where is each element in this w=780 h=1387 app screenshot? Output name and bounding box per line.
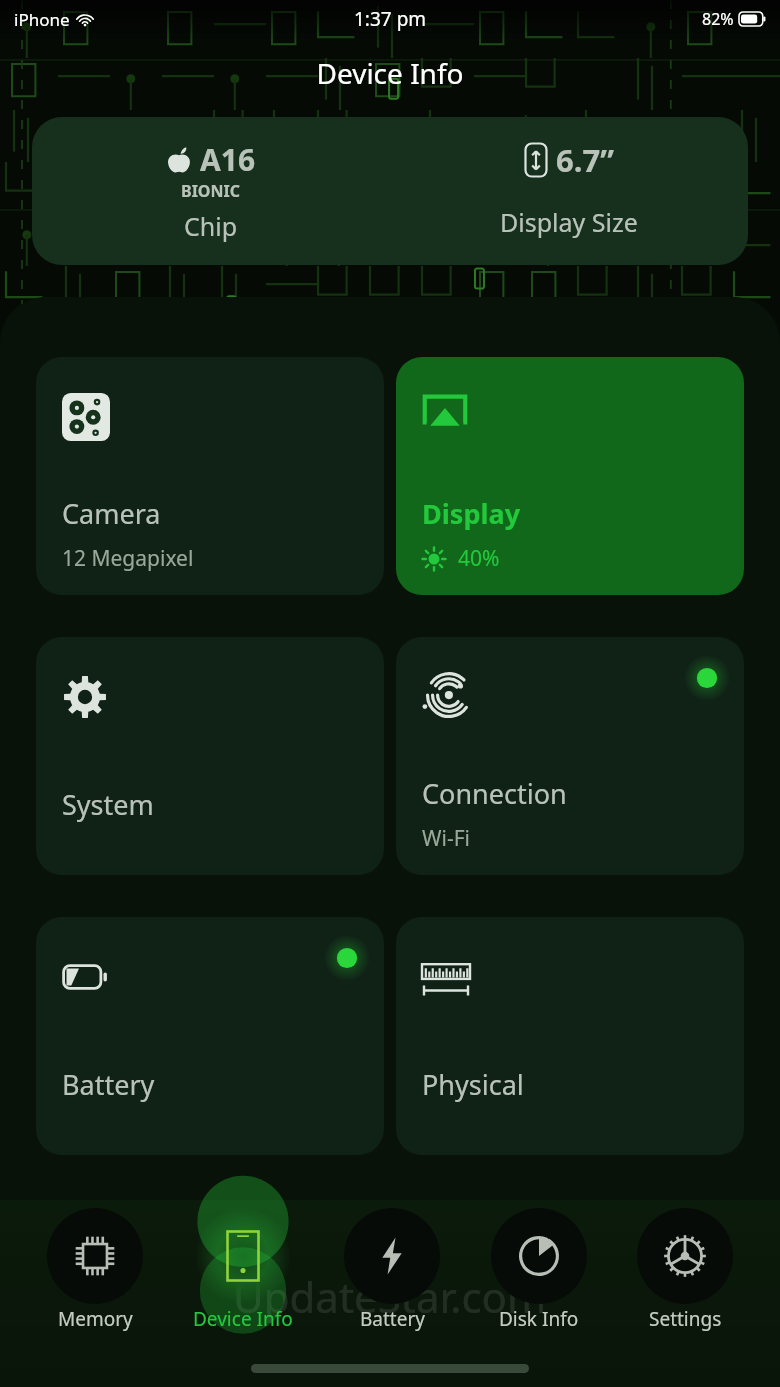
staticText: Battery xyxy=(62,1066,155,1103)
button[interactable]: Battery xyxy=(36,917,384,1155)
button[interactable]: Device Info xyxy=(189,1208,297,1332)
staticText: Memory xyxy=(58,1306,133,1332)
button[interactable]: Physical xyxy=(396,917,744,1155)
staticText: 12 Megapixel xyxy=(62,544,194,573)
staticText: Physical xyxy=(422,1066,524,1103)
button[interactable]: Memory xyxy=(43,1208,147,1332)
staticText: Battery xyxy=(360,1306,425,1332)
button[interactable]: Disk Info xyxy=(487,1208,591,1332)
staticText: A16 xyxy=(200,139,256,180)
staticText: 40% xyxy=(458,544,500,573)
staticText: Display Size xyxy=(500,205,638,239)
staticText: Device Info xyxy=(0,54,780,92)
staticText: UpdateStar.com xyxy=(233,1268,547,1325)
button[interactable]: Camera xyxy=(36,357,384,595)
staticText: Device Info xyxy=(193,1306,293,1332)
staticText: 6.7” xyxy=(556,139,614,181)
staticText: Connection xyxy=(422,775,567,812)
staticText: Settings xyxy=(649,1306,722,1332)
staticText: Chip xyxy=(184,209,238,243)
staticText: Display xyxy=(422,495,521,532)
button[interactable]: Display xyxy=(396,357,744,595)
staticText: Camera xyxy=(62,495,161,532)
staticText: BIONIC xyxy=(181,180,241,202)
staticText: 1:37 pm xyxy=(354,6,427,32)
button[interactable]: Battery xyxy=(340,1208,444,1332)
button[interactable]: Connection xyxy=(396,637,744,875)
staticText: 82% xyxy=(702,8,734,30)
staticText: Wi-Fi xyxy=(422,824,471,853)
button[interactable]: Settings xyxy=(633,1208,737,1332)
staticText: Disk Info xyxy=(499,1306,579,1332)
button[interactable]: A16 xyxy=(32,117,748,265)
staticText: System xyxy=(62,786,154,823)
button[interactable]: System xyxy=(36,637,384,875)
staticText: iPhone xyxy=(14,8,70,31)
